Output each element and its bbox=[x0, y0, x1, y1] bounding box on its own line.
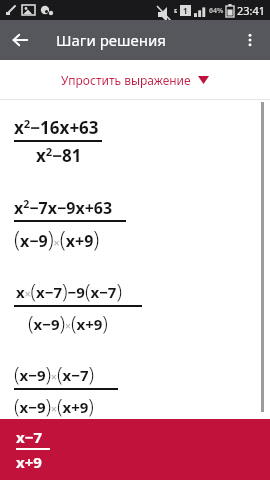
staticText: Шаги решения bbox=[56, 30, 166, 50]
staticText: 64% bbox=[209, 6, 224, 16]
staticText: x2−16x+63 bbox=[14, 116, 99, 139]
staticText: x×(x−7)−9(x−7) bbox=[16, 277, 122, 304]
staticText: (x−9)×(x+9) bbox=[28, 309, 108, 336]
staticText: 23:41 bbox=[237, 3, 266, 18]
staticText: x−7 bbox=[16, 427, 42, 447]
staticText: E bbox=[174, 7, 178, 15]
staticText: x2−81 bbox=[36, 144, 82, 167]
button[interactable]: x−7 bbox=[0, 419, 270, 480]
button[interactable]: Back bbox=[0, 20, 40, 60]
staticText: Упростить выражение bbox=[61, 72, 191, 88]
staticText: x+9 bbox=[16, 452, 42, 472]
button[interactable]: More options bbox=[230, 20, 270, 60]
staticText: (x−9)×(x+9) bbox=[14, 224, 100, 253]
staticText: 1 bbox=[183, 5, 188, 16]
staticText: x2−7x−9x+63 bbox=[14, 197, 113, 219]
staticText: (x−9)×(x+9) bbox=[14, 392, 94, 419]
button[interactable]: Упростить выражение bbox=[0, 60, 270, 99]
staticText: (x−9)×(x−7) bbox=[14, 360, 95, 387]
